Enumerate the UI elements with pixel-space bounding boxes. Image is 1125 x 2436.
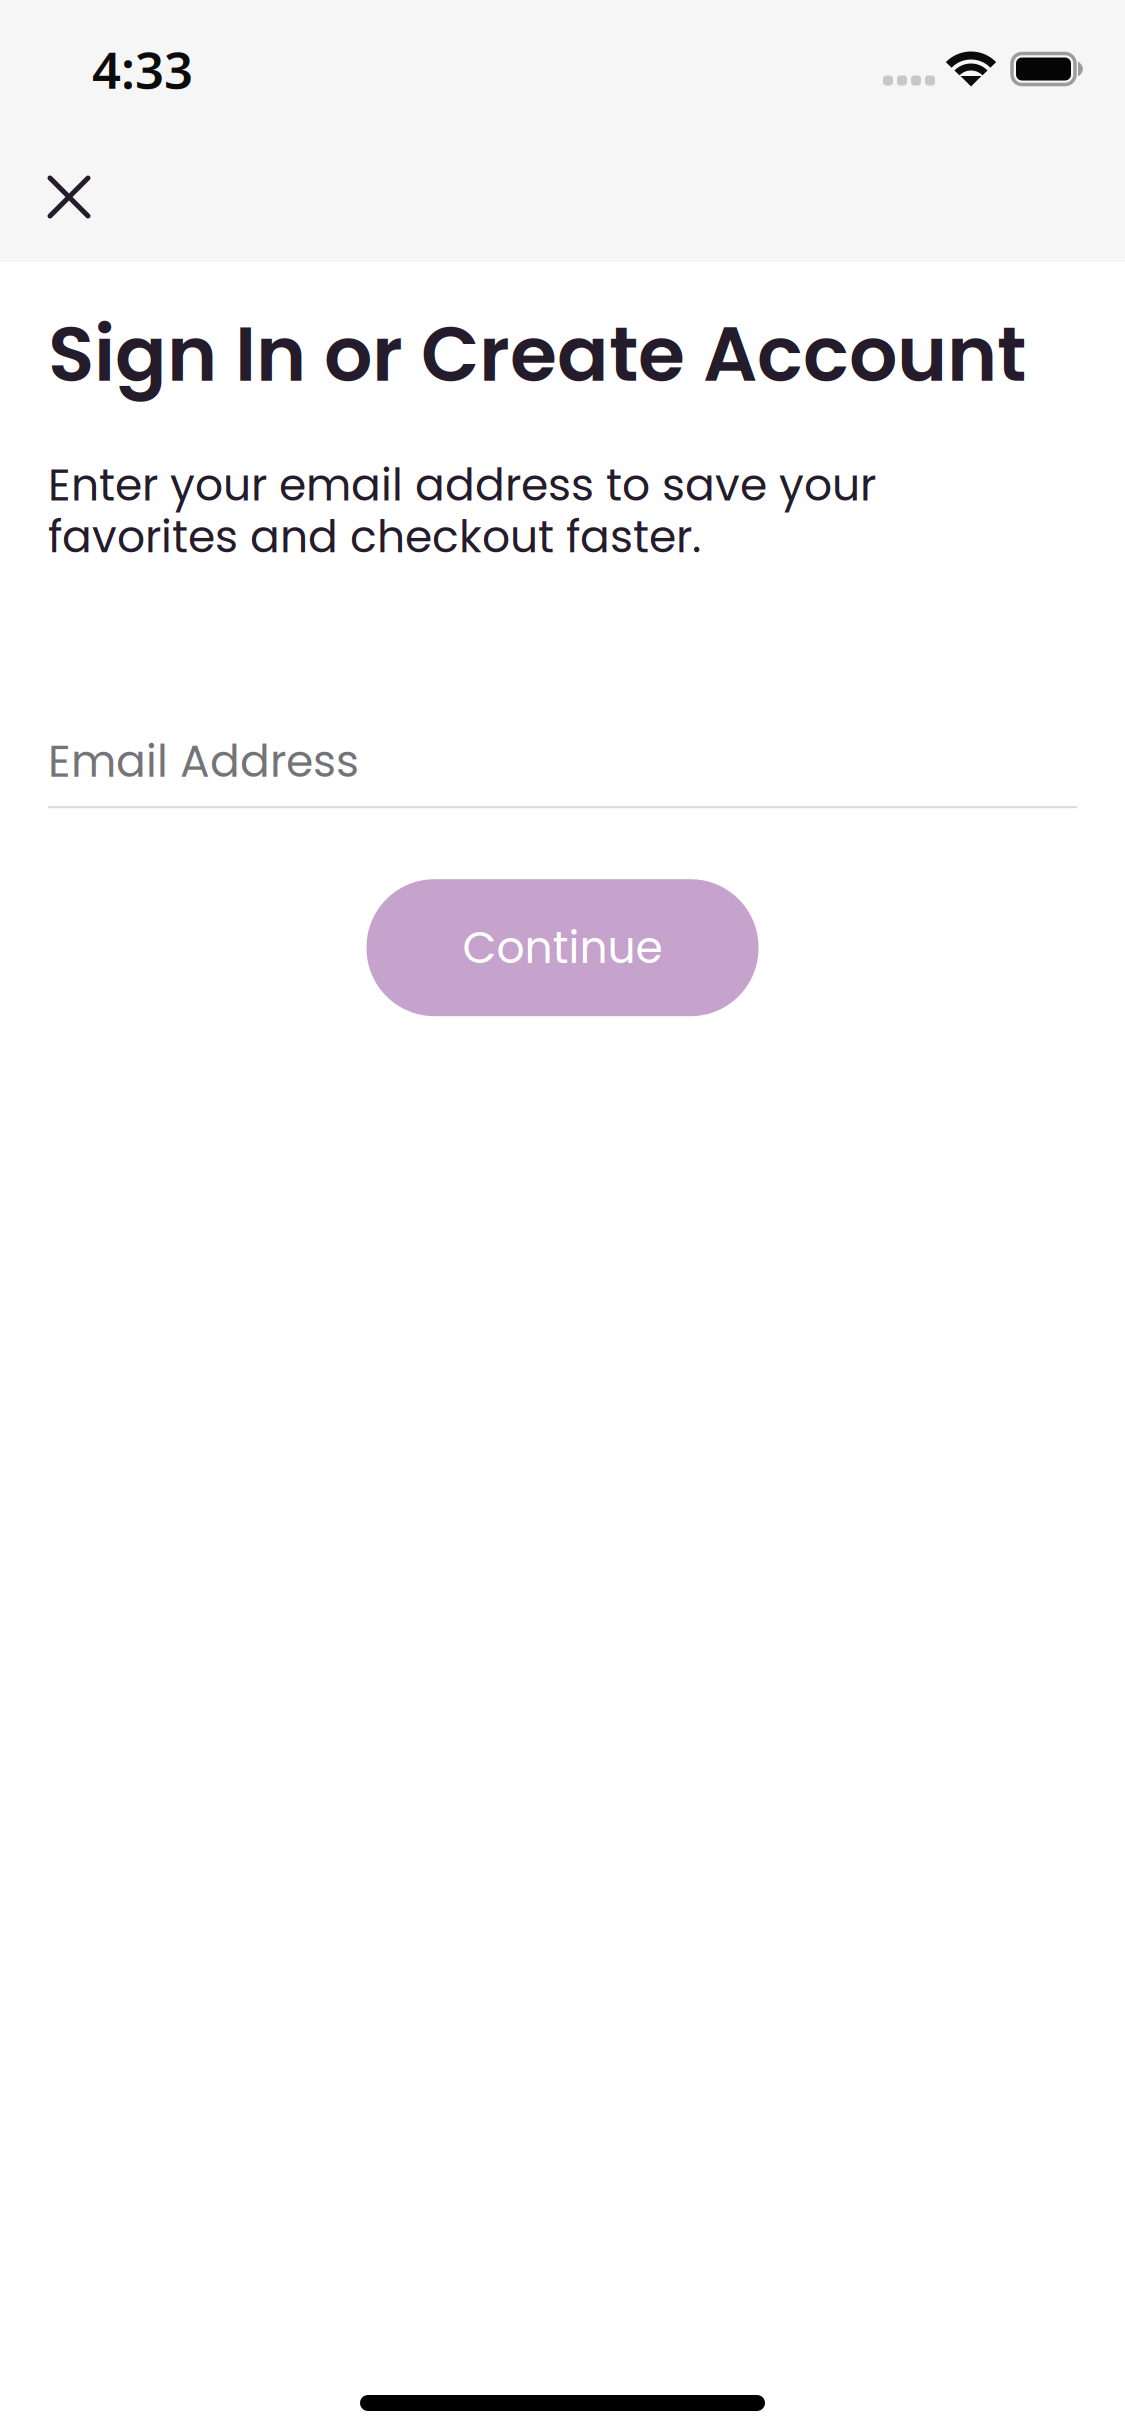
staticText: 4:33 [92,35,193,103]
staticText: Continue [462,917,662,978]
staticText: Enter your email address to save your fa… [48,454,876,568]
staticText: Sign In or Create Account [48,301,1026,407]
staticText: Email Address [48,731,359,792]
button[interactable]: Email Address [48,731,1077,808]
button[interactable]: Continue [366,879,758,1016]
button[interactable]: Close [27,155,111,239]
